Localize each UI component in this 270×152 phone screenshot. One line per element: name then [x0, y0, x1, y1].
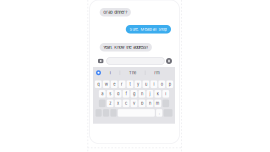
button[interactable]: Grab dinner?: [100, 8, 131, 16]
staticText: g: [133, 91, 135, 96]
staticText: I'm: [154, 70, 160, 75]
button[interactable]: Camera: [98, 58, 103, 64]
button[interactable]: Sure. Meatball shop!: [126, 25, 171, 33]
staticText: k: [157, 91, 159, 96]
staticText: v: [133, 101, 135, 106]
staticText: e: [113, 82, 115, 87]
staticText: Yeah. Know the address?: [103, 45, 148, 50]
button[interactable]: The: [129, 70, 136, 75]
staticText: n: [149, 101, 151, 106]
staticText: .: [159, 110, 160, 115]
staticText: q: [97, 82, 99, 87]
staticText: d: [117, 91, 119, 96]
staticText: i: [153, 82, 154, 87]
staticText: l: [165, 91, 166, 96]
button[interactable]: Voice input: [166, 58, 172, 64]
button[interactable]: I: [110, 70, 111, 75]
staticText: u: [145, 82, 147, 87]
staticText: a: [101, 91, 103, 96]
staticText: o: [161, 82, 163, 87]
staticText: z: [109, 101, 111, 106]
staticText: x: [117, 101, 119, 106]
staticText: b: [141, 101, 143, 106]
staticText: p: [169, 82, 171, 87]
button[interactable]: Yeah. Know the address?: [100, 43, 152, 51]
staticText: The: [129, 70, 136, 75]
button[interactable]: Google search: [96, 70, 101, 75]
staticText: m: [156, 101, 160, 106]
staticText: Sure. Meatball shop!: [129, 27, 167, 32]
button[interactable]: I'm: [154, 70, 160, 75]
staticText: Grab dinner?: [103, 10, 127, 15]
staticText: c: [125, 101, 127, 106]
staticText: w: [105, 82, 108, 87]
staticText: r: [121, 82, 123, 87]
staticText: s: [109, 91, 111, 96]
staticText: y: [137, 82, 139, 87]
staticText: j: [149, 91, 150, 96]
staticText: h: [141, 91, 143, 96]
staticText: I: [110, 70, 111, 75]
